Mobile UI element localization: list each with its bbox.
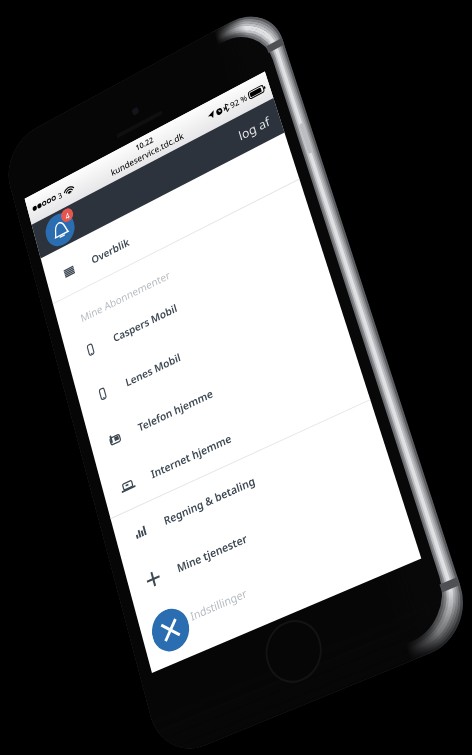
staticText: 3: [57, 189, 64, 201]
staticText: Indstillinger: [189, 585, 249, 625]
staticText: Mine tjenester: [175, 531, 249, 576]
button[interactable]: Lenes Mobil: [74, 260, 340, 427]
staticText: Overblik: [90, 235, 132, 267]
staticText: Regning & betaling: [162, 473, 257, 529]
button[interactable]: Mine tjenester: [123, 448, 402, 613]
staticText: 92 %: [229, 92, 248, 110]
button[interactable]: Mine Abonnementer: [54, 183, 315, 351]
staticText: Telefon hjemme: [136, 386, 215, 435]
button[interactable]: Overblik: [42, 136, 300, 304]
button[interactable]: Luk menu: [147, 602, 194, 658]
button[interactable]: Notifikationer: [42, 208, 78, 252]
staticText: Internet hjemme: [149, 431, 233, 482]
staticText: 10.22: [134, 134, 155, 153]
staticText: Mine Abonnementer: [79, 268, 172, 326]
staticText: Caspers Mobil: [111, 300, 179, 346]
staticText: Lenes Mobil: [124, 350, 183, 390]
button[interactable]: Internet hjemme: [98, 353, 370, 519]
button[interactable]: log af: [224, 98, 284, 158]
staticText: log af: [236, 112, 272, 144]
button[interactable]: Regning & betaling: [111, 400, 386, 566]
staticText: 4: [64, 209, 71, 221]
button[interactable]: Telefon hjemme: [86, 305, 355, 472]
button[interactable]: Indstillinger: [136, 497, 417, 662]
button[interactable]: Caspers Mobil: [62, 215, 325, 383]
staticText: kundeservice.tdc.dk: [110, 130, 185, 179]
